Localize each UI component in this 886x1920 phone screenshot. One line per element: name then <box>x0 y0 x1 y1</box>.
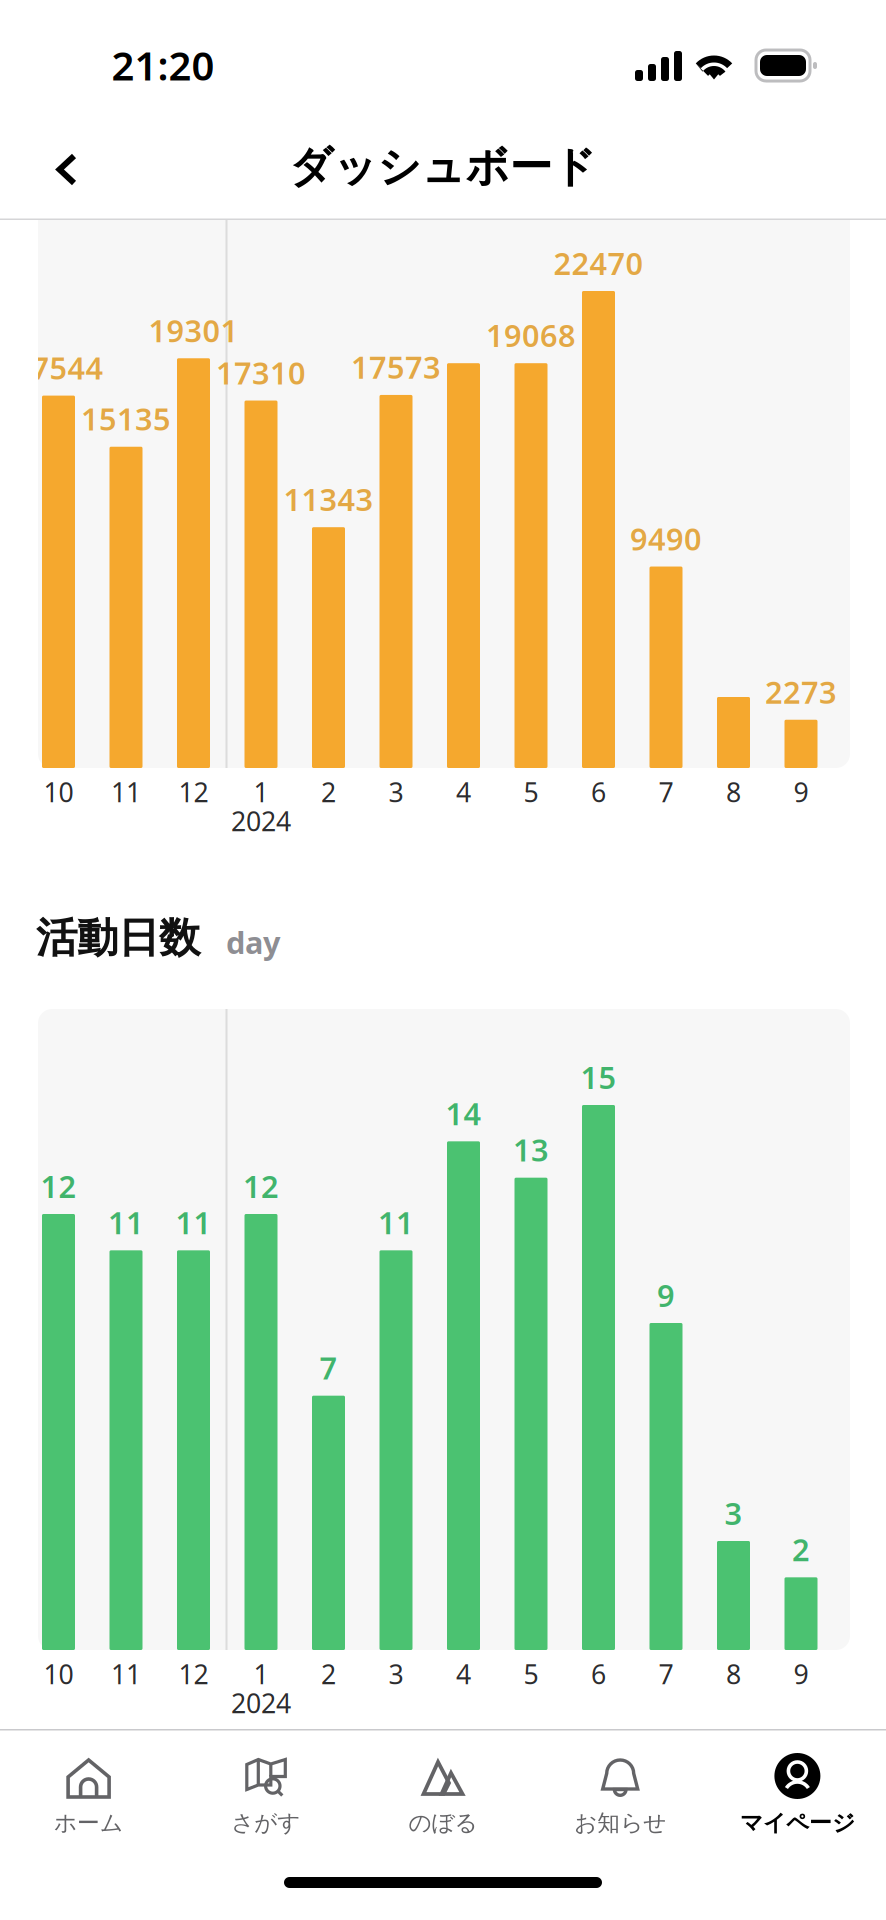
button[interactable]: Back <box>16 125 106 215</box>
staticText: 17310 <box>216 352 306 393</box>
staticText: ホーム <box>54 1809 123 1837</box>
staticText: 12 <box>178 774 208 810</box>
staticText: 13 <box>513 1129 549 1170</box>
staticText: 19068 <box>486 315 576 356</box>
staticText: 7 <box>658 774 673 810</box>
staticText: 2024 <box>231 803 291 839</box>
staticText: 11 <box>111 774 141 810</box>
staticText: 2024 <box>231 1685 291 1721</box>
staticText: さがす <box>231 1809 300 1837</box>
staticText: 9 <box>657 1275 675 1315</box>
staticText: 8 <box>726 774 741 810</box>
staticText: 8 <box>726 1656 741 1692</box>
staticText: 1 <box>253 1656 268 1692</box>
staticText: 17544 <box>13 347 103 388</box>
staticText: 11 <box>108 1202 144 1243</box>
staticText: 活動日数 <box>36 913 200 963</box>
staticText: 19301 <box>148 310 238 351</box>
staticText: 15 <box>580 1057 616 1097</box>
staticText: 7 <box>319 1347 337 1388</box>
staticText: 2 <box>321 1656 336 1692</box>
staticText: 2273 <box>765 671 837 712</box>
staticText: 2 <box>321 774 336 810</box>
staticText: のぼる <box>408 1809 477 1837</box>
staticText: 3 <box>388 774 403 810</box>
button[interactable]: のぼる <box>354 1731 532 1856</box>
staticText: 5 <box>523 774 538 810</box>
staticText: お知らせ <box>574 1809 666 1837</box>
staticText: 12 <box>40 1166 76 1206</box>
staticText: 9490 <box>630 518 702 559</box>
staticText: 3 <box>724 1493 742 1533</box>
button[interactable]: マイページ <box>709 1731 886 1856</box>
staticText: 4 <box>456 1656 471 1692</box>
button[interactable]: ホーム <box>0 1731 177 1856</box>
staticText: 12 <box>243 1166 279 1206</box>
staticText: 3 <box>388 1656 403 1692</box>
staticText: 10 <box>43 774 73 810</box>
staticText: 4 <box>456 774 471 810</box>
staticText: 11 <box>378 1202 414 1243</box>
staticText: 9 <box>793 1656 808 1692</box>
staticText: 7 <box>658 1656 673 1692</box>
staticText: day <box>226 922 281 962</box>
staticText: 9 <box>793 774 808 810</box>
staticText: 15135 <box>81 398 171 439</box>
staticText: 11 <box>111 1656 141 1692</box>
staticText: マイページ <box>740 1809 855 1837</box>
staticText: 5 <box>523 1656 538 1692</box>
staticText: 1 <box>253 774 268 810</box>
staticText: ダッシュボード <box>289 141 596 193</box>
staticText: 10 <box>43 1656 73 1692</box>
staticText: 11 <box>175 1202 211 1243</box>
staticText: 21:20 <box>111 38 214 91</box>
staticText: 6 <box>591 774 606 810</box>
staticText: 6 <box>591 1656 606 1692</box>
staticText: 14 <box>445 1093 481 1134</box>
button[interactable]: さがす <box>177 1731 354 1856</box>
staticText: 22470 <box>553 243 643 283</box>
staticText: 11343 <box>283 479 373 519</box>
button[interactable]: お知らせ <box>532 1731 709 1856</box>
staticText: 17573 <box>351 347 441 387</box>
staticText: 12 <box>178 1656 208 1692</box>
staticText: 2 <box>792 1529 810 1570</box>
